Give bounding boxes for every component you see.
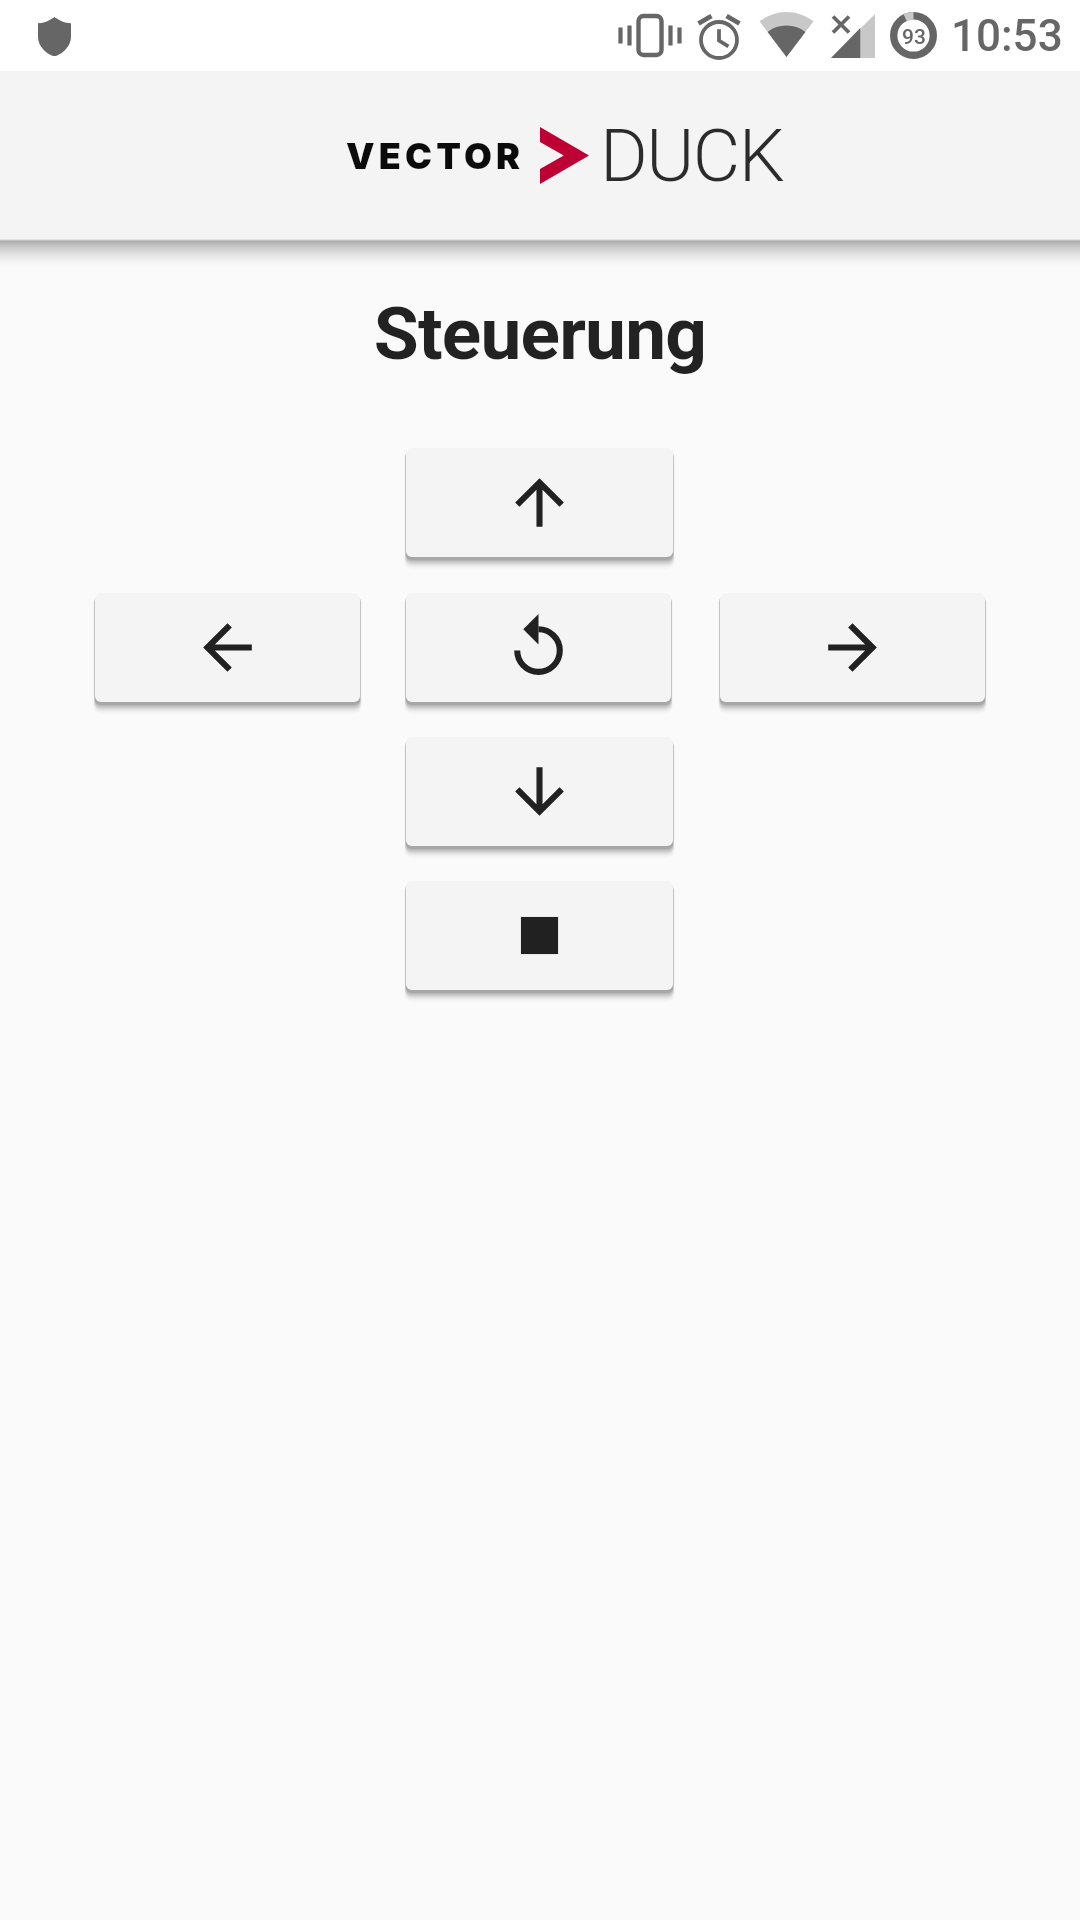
button[interactable]: Rückwärts	[406, 737, 673, 846]
staticText: VECTOR	[346, 134, 525, 178]
button[interactable]: Rechts	[720, 593, 985, 702]
button[interactable]: Vorwärts	[406, 448, 673, 557]
staticText: DUCK	[600, 113, 784, 199]
staticText: 10:53	[951, 10, 1063, 62]
button[interactable]: Drehen	[406, 593, 671, 702]
staticText: Steuerung	[0, 291, 1080, 377]
staticText: 93	[902, 25, 926, 50]
button[interactable]: Stopp	[406, 881, 673, 990]
button[interactable]: Links	[95, 593, 360, 702]
